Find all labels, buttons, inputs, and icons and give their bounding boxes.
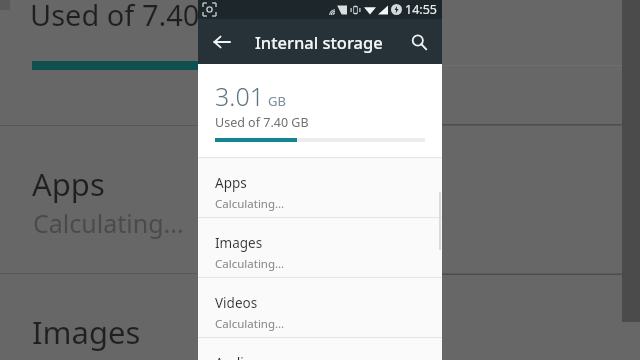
staticText: Internal storage bbox=[255, 31, 383, 53]
staticText: Audio bbox=[215, 354, 252, 360]
staticText: Videos bbox=[215, 294, 258, 312]
button[interactable]: Videos bbox=[198, 278, 442, 337]
staticText: Apps bbox=[215, 174, 247, 192]
staticText: Used of 7.40 G bbox=[30, 0, 229, 34]
button[interactable]: Audio bbox=[198, 338, 442, 360]
button[interactable]: Navigate up bbox=[206, 26, 238, 58]
staticText: 14:55 bbox=[405, 1, 437, 18]
button[interactable]: Search bbox=[403, 26, 435, 58]
staticText: 3.01 bbox=[215, 79, 264, 113]
staticText: Used of 7.40 GB bbox=[215, 114, 309, 131]
button[interactable]: 3.01 bbox=[198, 64, 442, 157]
staticText: Images bbox=[32, 311, 141, 353]
staticText: Calculating… bbox=[215, 256, 285, 272]
staticText: GB bbox=[268, 92, 286, 110]
button[interactable]: Apps bbox=[198, 158, 442, 217]
staticText: Images bbox=[215, 234, 263, 252]
staticText: Apps bbox=[32, 163, 105, 205]
staticText: Calculating... bbox=[33, 206, 184, 240]
staticText: Calculating… bbox=[215, 316, 285, 332]
button[interactable]: Images bbox=[198, 218, 442, 277]
staticText: Calculating… bbox=[215, 196, 285, 212]
